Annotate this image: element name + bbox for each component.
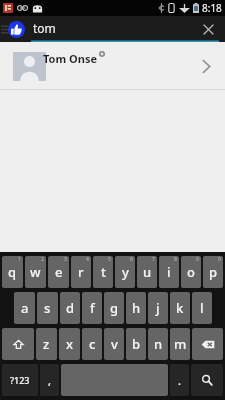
button[interactable]: , xyxy=(40,364,59,396)
button[interactable]: n xyxy=(148,328,168,360)
staticText: s xyxy=(44,299,51,317)
staticText: tom xyxy=(33,20,56,36)
staticText: . xyxy=(178,373,181,388)
staticText: 7 xyxy=(152,256,155,263)
staticText: k xyxy=(176,299,184,317)
staticText: l xyxy=(200,299,204,317)
button[interactable]: Backspace xyxy=(192,328,223,360)
button[interactable]: h xyxy=(126,292,146,324)
staticText: u xyxy=(143,263,152,281)
staticText: d xyxy=(66,299,75,317)
button[interactable]: g xyxy=(104,292,124,324)
other: Menu xyxy=(1,24,8,35)
button[interactable]: j xyxy=(148,292,168,324)
button[interactable]: a xyxy=(14,292,35,324)
staticText: j xyxy=(156,299,160,317)
button[interactable]: l xyxy=(192,292,212,324)
button[interactable]: r xyxy=(71,256,91,288)
staticText: 9 xyxy=(196,256,199,263)
staticText: g xyxy=(110,299,119,317)
button[interactable]: d xyxy=(60,292,80,324)
staticText: x xyxy=(66,335,74,353)
staticText: b xyxy=(132,335,141,353)
button[interactable]: b xyxy=(126,328,146,360)
button[interactable]: k xyxy=(170,292,190,324)
staticText: y xyxy=(122,263,129,281)
staticText: a xyxy=(21,299,29,317)
staticText: 2 xyxy=(41,256,44,263)
staticText: e xyxy=(55,263,63,281)
button[interactable]: Clear search xyxy=(199,20,217,38)
button[interactable]: o xyxy=(181,256,201,288)
staticText: w xyxy=(30,263,41,281)
staticText: p xyxy=(209,263,218,281)
button[interactable]: y xyxy=(115,256,135,288)
staticText: z xyxy=(43,335,50,353)
button[interactable]: m xyxy=(170,328,190,360)
staticText: f xyxy=(90,299,95,317)
staticText: m xyxy=(174,335,187,353)
button[interactable]: s xyxy=(37,292,58,324)
button[interactable]: . xyxy=(170,364,189,396)
button[interactable]: f xyxy=(82,292,102,324)
staticText: n xyxy=(154,335,163,353)
staticText: ?123 xyxy=(10,374,30,386)
button[interactable]: w xyxy=(25,256,46,288)
button[interactable]: q xyxy=(2,256,23,288)
button[interactable]: i xyxy=(159,256,179,288)
button[interactable]: Shift xyxy=(2,328,34,360)
staticText: i xyxy=(167,263,171,281)
staticText: c xyxy=(89,335,96,353)
button[interactable]: e xyxy=(48,256,69,288)
other: Open xyxy=(202,59,211,74)
button[interactable]: x xyxy=(59,328,80,360)
staticText: 8:18 xyxy=(202,1,222,15)
button[interactable]: c xyxy=(82,328,102,360)
button[interactable]: Tom Onse xyxy=(0,42,225,90)
staticText: Tom Onse xyxy=(43,51,97,66)
staticText: 8 xyxy=(174,256,177,263)
staticText: r xyxy=(78,263,84,281)
button[interactable]: u xyxy=(137,256,157,288)
staticText: h xyxy=(132,299,141,317)
button[interactable]: v xyxy=(104,328,124,360)
staticText: 3 xyxy=(64,256,67,263)
staticText: t xyxy=(101,263,106,281)
staticText: , xyxy=(48,373,52,388)
button[interactable]: App logo xyxy=(8,21,25,38)
staticText: 6 xyxy=(130,256,133,263)
button[interactable]: ?123 xyxy=(2,364,38,396)
staticText: 0 xyxy=(218,256,221,263)
staticText: 4 xyxy=(86,256,89,263)
button[interactable]: p xyxy=(203,256,223,288)
staticText: 5 xyxy=(108,256,111,263)
staticText: q xyxy=(8,263,17,281)
button[interactable]: z xyxy=(36,328,57,360)
button[interactable]: t xyxy=(93,256,113,288)
staticText: v xyxy=(111,335,118,353)
staticText: 1 xyxy=(18,256,21,263)
button[interactable]: Search xyxy=(191,364,223,396)
staticText: o xyxy=(187,263,195,281)
